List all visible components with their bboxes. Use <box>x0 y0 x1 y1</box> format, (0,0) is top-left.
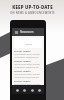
staticText: ON NEWS & ANNOUNCEMENTS <box>10 11 55 15</box>
button[interactable]: Product update announcement <box>14 60 42 70</box>
other: Open navigation menu <box>14 30 18 34</box>
button[interactable]: Product update announcement <box>14 70 42 80</box>
button[interactable]: Search <box>21 87 27 93</box>
button[interactable]: Latest <box>14 38 42 48</box>
staticText: Lorem ipsum dolor sit amet consectetur a… <box>14 53 42 58</box>
button[interactable]: Product update announcement <box>14 50 42 60</box>
staticText: Lorem ipsum dolor sit amet consectetur a… <box>14 73 42 78</box>
staticText: Lorem ipsum dolor sit amet consectetur a… <box>14 83 42 85</box>
button[interactable]: Alerts <box>29 87 35 93</box>
staticText: Product update announcement <box>14 70 42 73</box>
button[interactable]: More <box>36 87 42 93</box>
staticText: Latest <box>25 42 32 45</box>
staticText: Newsroom <box>20 30 34 34</box>
staticText: Product update announcement <box>14 50 42 53</box>
button[interactable]: Open navigation menu <box>12 28 44 36</box>
button[interactable]: Product update announcement <box>14 80 42 85</box>
staticText: Lorem ipsum dolor sit amet consectetur a… <box>14 63 42 68</box>
staticText: Product update announcement <box>14 60 42 63</box>
staticText: Product update announcement <box>14 80 42 83</box>
button[interactable]: Home <box>14 87 20 93</box>
staticText: KEEP UP-TO-DATE <box>12 4 53 10</box>
